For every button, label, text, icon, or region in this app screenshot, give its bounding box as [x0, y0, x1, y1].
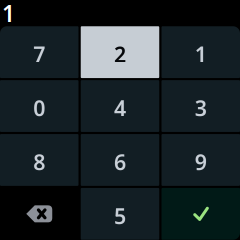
staticText: 4	[114, 94, 126, 122]
button[interactable]: 7	[0, 26, 78, 78]
staticText: 9	[195, 148, 207, 176]
button[interactable]: 6	[81, 134, 159, 186]
button[interactable]: 3	[161, 80, 240, 132]
button[interactable]: Delete	[0, 188, 78, 240]
button[interactable]: 4	[81, 80, 159, 132]
button[interactable]: Confirm	[161, 188, 240, 240]
staticText: 7	[33, 40, 45, 68]
button[interactable]: 0	[0, 80, 78, 132]
button[interactable]: 2	[81, 26, 159, 78]
staticText: 3	[195, 94, 207, 122]
button[interactable]: 1	[161, 26, 240, 78]
staticText: 1	[195, 40, 207, 68]
button[interactable]: 5	[81, 188, 159, 240]
button[interactable]: 9	[161, 134, 240, 186]
staticText: 1	[2, 0, 15, 28]
button[interactable]: 8	[0, 134, 78, 186]
staticText: 2	[114, 40, 126, 68]
staticText: 6	[114, 148, 126, 176]
staticText: 5	[114, 202, 126, 230]
staticText: 0	[33, 94, 45, 122]
staticText: 8	[33, 148, 45, 176]
